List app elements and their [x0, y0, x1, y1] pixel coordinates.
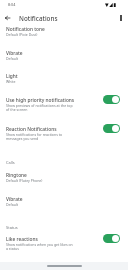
button[interactable]: Light	[0, 62, 128, 85]
staticText: Default (Flutey Phone)	[6, 178, 43, 183]
staticText: Show notifications for reactions to mess…	[6, 132, 75, 141]
staticText: Default (Pixie Dust)	[6, 32, 38, 37]
staticText: Notifications	[19, 14, 58, 23]
staticText: Status	[6, 225, 18, 230]
button[interactable]: Vibrate	[0, 38, 128, 62]
staticText: Ringtone	[6, 172, 27, 179]
staticText: Use high priority notifications	[6, 97, 75, 104]
button[interactable]: Toggle Like reactions	[103, 234, 120, 243]
staticText: Show previews of notifications at the to…	[6, 103, 75, 112]
button[interactable]: Toggle Reaction Notifications	[103, 124, 120, 133]
button[interactable]: Reaction Notifications	[0, 113, 128, 142]
staticText: Show notifications when you get likes on…	[6, 242, 75, 251]
button[interactable]: Ringtone	[0, 165, 128, 184]
button[interactable]: Back	[0, 12, 15, 24]
staticText: 8:04	[8, 2, 16, 7]
staticText: Default	[6, 56, 19, 61]
button[interactable]: Notification tone	[0, 24, 128, 38]
button[interactable]: Use high priority notifications	[0, 85, 128, 113]
staticText: Reaction Notifications	[6, 126, 57, 133]
staticText: Light	[6, 73, 18, 80]
staticText: Vibrate	[6, 196, 23, 203]
staticText: Default	[6, 202, 19, 207]
staticText: Vibrate	[6, 50, 23, 57]
button[interactable]: Like reactions	[0, 230, 128, 252]
staticText: Like reactions	[6, 236, 38, 243]
staticText: Notification tone	[6, 26, 45, 33]
staticText: White	[6, 79, 16, 84]
button[interactable]: Toggle Use high priority notifications	[103, 95, 120, 104]
button[interactable]: More options	[114, 12, 128, 24]
staticText: Calls	[6, 160, 15, 165]
button[interactable]: Vibrate	[0, 184, 128, 208]
